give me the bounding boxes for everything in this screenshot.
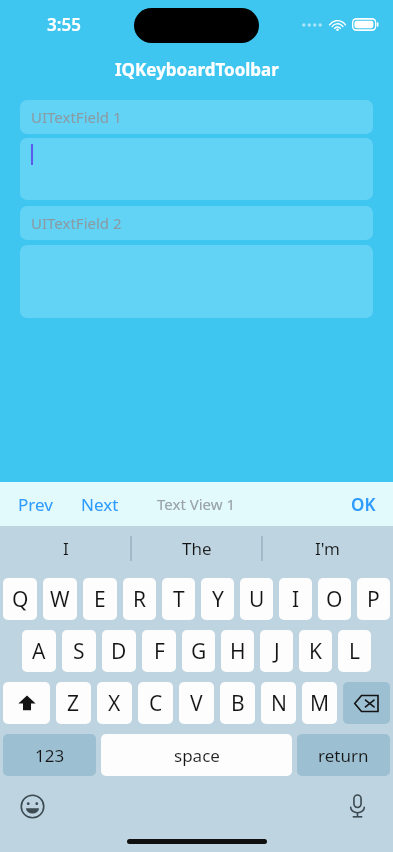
staticText: I: [292, 585, 300, 614]
button[interactable]: M: [302, 682, 337, 724]
button[interactable]: UITextField 2: [20, 206, 373, 240]
staticText: U: [249, 585, 265, 614]
staticText: V: [190, 689, 203, 718]
staticText: Z: [67, 689, 80, 718]
staticText: IQKeyboardToolbar: [115, 58, 279, 81]
staticText: space: [174, 744, 220, 767]
button[interactable]: D: [102, 630, 136, 672]
button[interactable]: K: [299, 630, 332, 672]
button[interactable]: O: [318, 578, 351, 620]
staticText: M: [310, 689, 330, 718]
button[interactable]: W: [43, 578, 77, 620]
button[interactable]: G: [182, 630, 215, 672]
button[interactable]: return: [297, 734, 390, 776]
staticText: R: [133, 585, 147, 614]
button[interactable]: V: [179, 682, 214, 724]
button[interactable]: C: [138, 682, 173, 724]
staticText: OK: [351, 493, 376, 515]
staticText: Y: [212, 585, 224, 614]
staticText: K: [309, 637, 322, 666]
staticText: D: [111, 637, 127, 666]
staticText: return: [318, 744, 369, 767]
button[interactable]: Dictation: [339, 788, 375, 824]
staticText: I: [63, 537, 69, 560]
button[interactable]: The: [131, 526, 262, 571]
button[interactable]: P: [357, 578, 390, 620]
button[interactable]: R: [123, 578, 156, 620]
button[interactable]: Q: [3, 578, 37, 620]
staticText: Next: [81, 493, 119, 515]
button[interactable]: X: [97, 682, 132, 724]
button[interactable]: I'm: [262, 526, 393, 571]
staticText: H: [230, 637, 246, 666]
staticText: 123: [35, 744, 65, 767]
button[interactable]: Next: [71, 482, 129, 526]
button[interactable]: J: [260, 630, 293, 672]
staticText: Text View 1: [157, 494, 236, 514]
staticText: 3:55: [47, 13, 81, 36]
button[interactable]: L: [338, 630, 371, 672]
staticText: Q: [12, 585, 29, 614]
button[interactable]: F: [142, 630, 176, 672]
button[interactable]: OK: [334, 482, 393, 526]
button[interactable]: UITextField 1: [20, 100, 373, 134]
staticText: I'm: [315, 537, 340, 560]
button[interactable]: I: [279, 578, 312, 620]
button[interactable]: A: [22, 630, 56, 672]
staticText: P: [367, 585, 380, 614]
button[interactable]: Z: [56, 682, 91, 724]
button[interactable]: Shift: [3, 682, 50, 724]
staticText: L: [349, 637, 361, 666]
button[interactable]: Emoji: [14, 788, 50, 824]
button[interactable]: I: [0, 526, 131, 571]
button[interactable]: Y: [201, 578, 234, 620]
button[interactable]: N: [261, 682, 296, 724]
staticText: UITextField 1: [31, 107, 122, 127]
staticText: The: [182, 537, 212, 560]
button[interactable]: Backspace: [343, 682, 390, 724]
button[interactable]: B: [220, 682, 255, 724]
staticText: UITextField 2: [31, 213, 122, 233]
button[interactable]: T: [162, 578, 195, 620]
staticText: B: [231, 689, 245, 718]
button[interactable]: U: [240, 578, 273, 620]
staticText: G: [191, 637, 207, 666]
staticText: Prev: [18, 493, 53, 515]
button[interactable]: Prev: [0, 482, 71, 526]
staticText: S: [73, 637, 85, 666]
staticText: F: [154, 637, 165, 666]
staticText: N: [271, 689, 287, 718]
button[interactable]: E: [83, 578, 117, 620]
staticText: C: [149, 689, 163, 718]
button[interactable]: 123: [3, 734, 96, 776]
button[interactable]: S: [62, 630, 96, 672]
staticText: E: [94, 585, 106, 614]
staticText: W: [50, 585, 70, 614]
staticText: T: [173, 585, 185, 614]
button[interactable]: H: [221, 630, 254, 672]
staticText: A: [32, 637, 46, 666]
button[interactable]: space: [101, 734, 292, 776]
staticText: X: [108, 689, 121, 718]
button[interactable]: [20, 138, 373, 200]
staticText: O: [326, 585, 343, 614]
staticText: J: [274, 637, 280, 666]
